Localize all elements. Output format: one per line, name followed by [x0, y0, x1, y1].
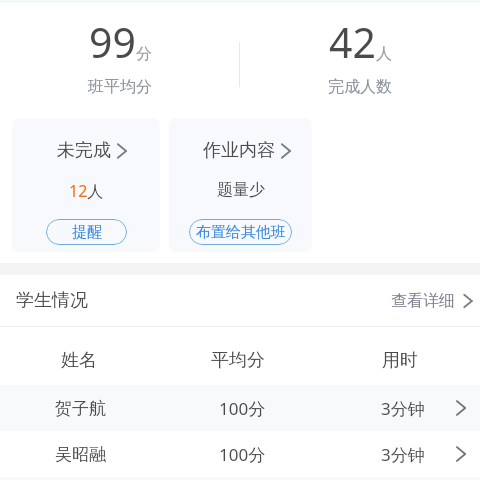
staticText: 提醒	[72, 223, 102, 242]
staticText: 姓名	[61, 349, 97, 372]
button[interactable]: 学生情况	[0, 275, 480, 326]
staticText: 完成人数	[328, 77, 392, 97]
button[interactable]: 贺子航	[0, 385, 480, 431]
button[interactable]: 未完成	[12, 118, 160, 252]
staticText: 人	[376, 44, 392, 64]
staticText: 12人	[69, 180, 104, 202]
staticText: 100分	[219, 397, 266, 420]
button[interactable]: 布置给其他班	[189, 219, 292, 245]
button[interactable]: 提醒	[46, 219, 127, 245]
staticText: 100分	[219, 443, 266, 466]
staticText: 题量少	[217, 180, 265, 200]
staticText: 贺子航	[55, 398, 106, 419]
staticText: 3分钟	[381, 443, 425, 466]
staticText: 学生情况	[16, 289, 88, 312]
staticText: 查看详细	[391, 291, 455, 311]
staticText: 42	[329, 14, 376, 70]
button[interactable]: 作业内容	[169, 118, 312, 252]
staticText: 分	[136, 44, 152, 64]
staticText: 班平均分	[88, 77, 152, 97]
staticText: 未完成	[57, 139, 111, 162]
staticText: 吴昭融	[55, 444, 106, 465]
staticText: 布置给其他班	[196, 223, 286, 242]
staticText: 作业内容	[203, 139, 275, 162]
button[interactable]: 吴昭融	[0, 431, 480, 477]
staticText: 平均分	[211, 349, 265, 372]
staticText: 用时	[382, 349, 418, 372]
staticText: 3分钟	[381, 397, 425, 420]
staticText: 99	[89, 14, 136, 70]
